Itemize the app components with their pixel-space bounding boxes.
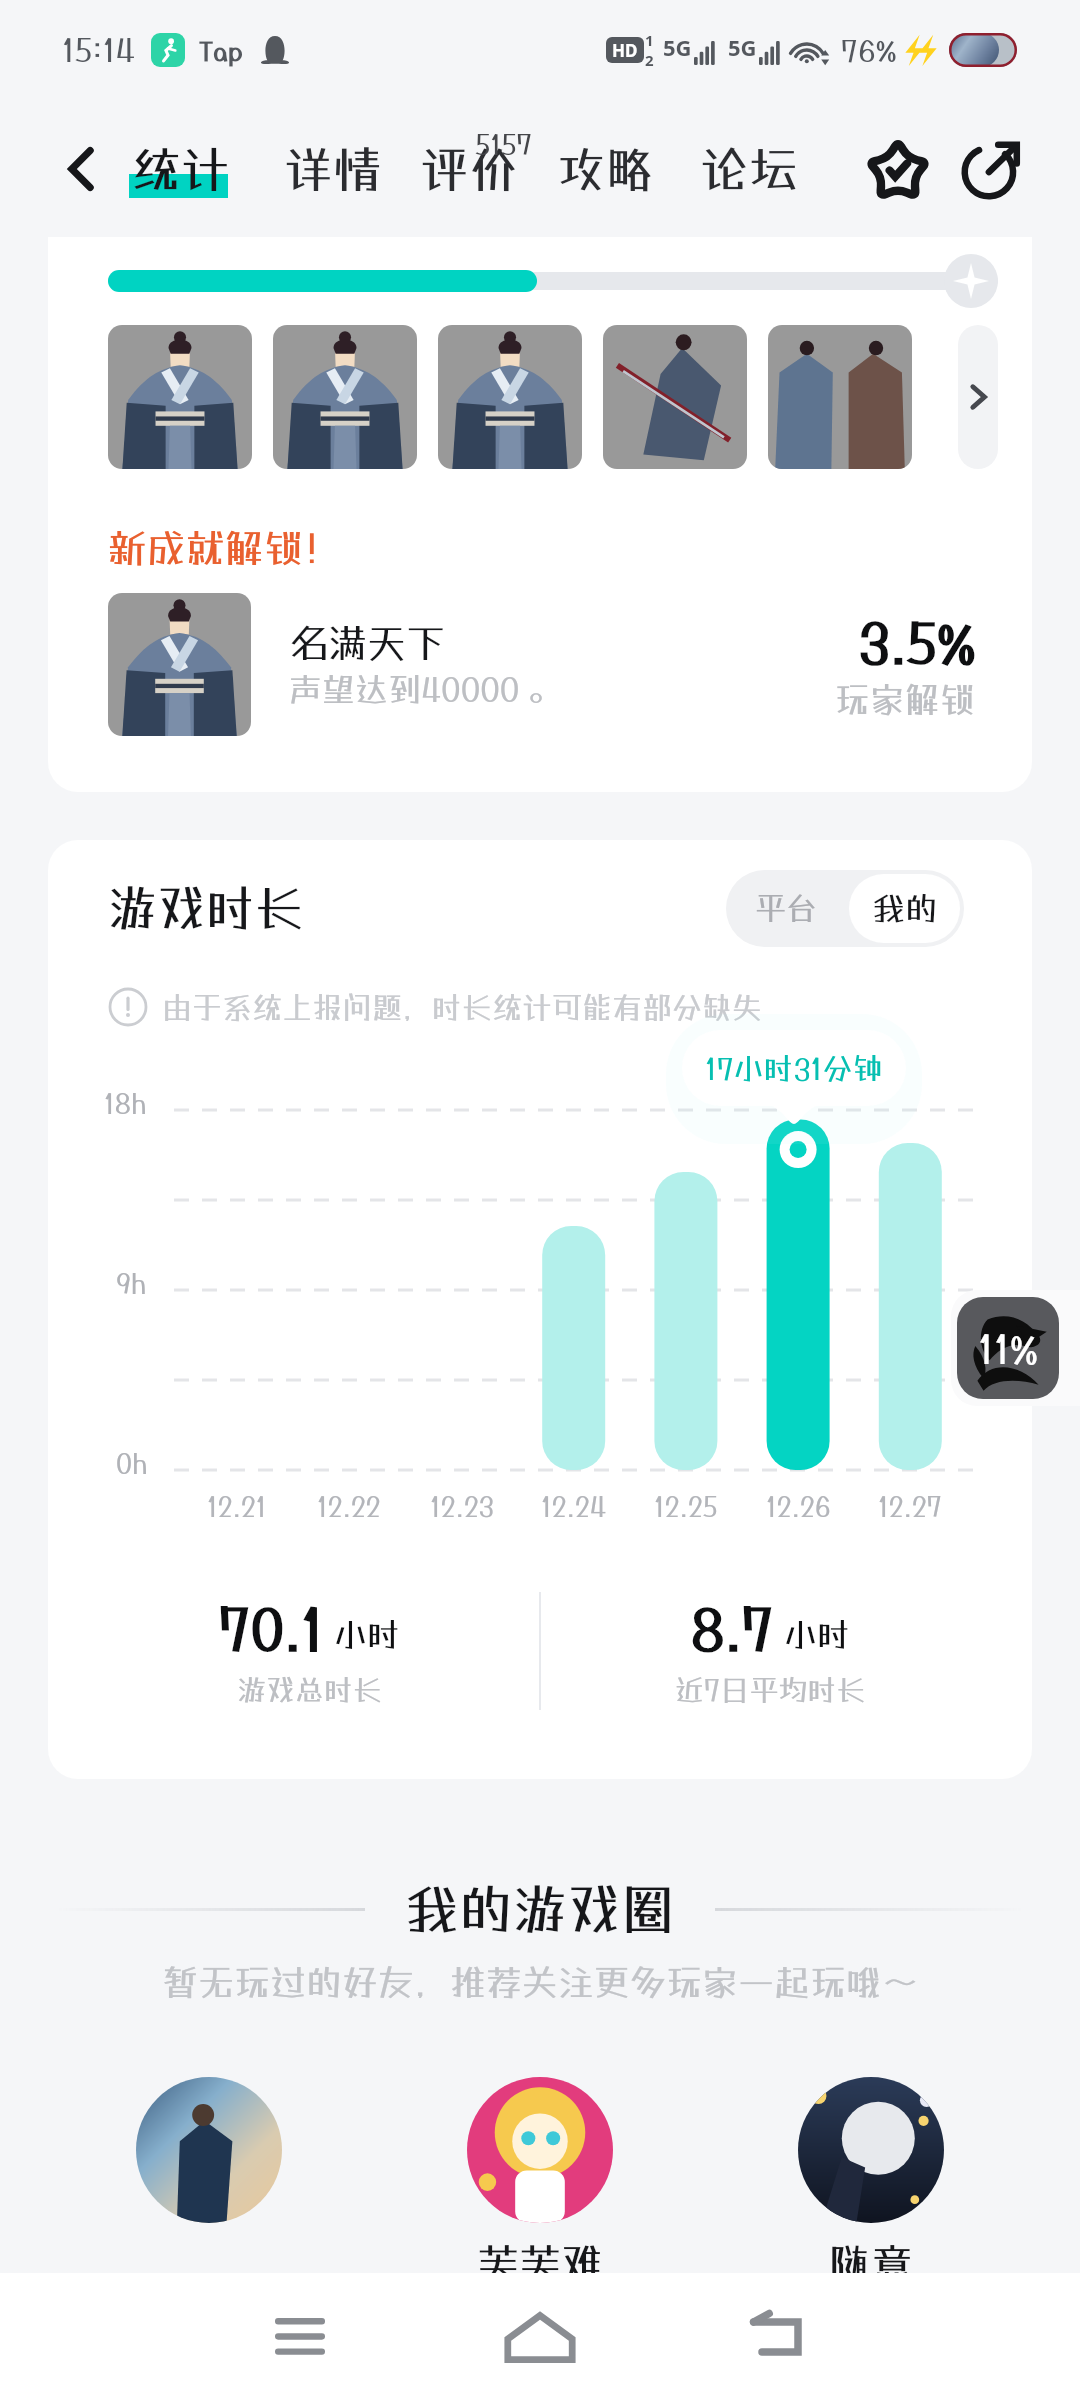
button[interactable]: [768, 325, 912, 469]
button[interactable]: [108, 325, 252, 469]
staticText: 76%: [841, 33, 897, 68]
button[interactable]: 我的: [849, 874, 960, 943]
staticText: 我的游戏圈: [405, 1877, 675, 1941]
staticText: 70.1: [219, 1596, 324, 1662]
button[interactable]: 统计: [132, 140, 231, 198]
staticText: 12.23: [430, 1490, 494, 1522]
staticText: 12.26: [766, 1490, 831, 1522]
staticText: 2: [645, 50, 654, 70]
button[interactable]: Recent apps: [240, 2277, 360, 2397]
staticText: 新成就解锁！: [108, 525, 343, 571]
button[interactable]: 论坛: [700, 140, 799, 198]
staticText: 12.22: [317, 1490, 381, 1522]
staticText: 我的: [872, 889, 938, 928]
staticText: 12.24: [541, 1490, 607, 1522]
button[interactable]: 平台: [726, 870, 845, 947]
staticText: 详情: [284, 140, 383, 198]
staticText: 8.7: [691, 1596, 774, 1662]
staticText: 17小时31分钟: [705, 1051, 883, 1086]
button[interactable]: [136, 2077, 282, 2273]
staticText: 1: [645, 30, 654, 50]
staticText: 5G: [728, 32, 757, 62]
staticText: 11%: [978, 1325, 1039, 1372]
staticText: 3.5%: [859, 610, 976, 675]
button[interactable]: [438, 325, 582, 469]
staticText: 平台: [755, 890, 817, 927]
staticText: 攻略: [557, 140, 656, 198]
button[interactable]: Favorite: [858, 129, 938, 209]
button[interactable]: 芙芙难: [467, 2077, 613, 2273]
staticText: 近7日平均时长: [675, 1673, 866, 1707]
staticText: 12.25: [654, 1490, 718, 1522]
staticText: 15:14: [62, 31, 135, 69]
staticText: 12.21: [207, 1490, 267, 1522]
staticText: Tap: [199, 35, 243, 66]
button[interactable]: 评价: [420, 140, 519, 198]
staticText: HD: [612, 39, 638, 62]
staticText: 5G: [663, 32, 692, 62]
button[interactable]: Download progress: [951, 1290, 1080, 1406]
button[interactable]: 攻略: [557, 140, 656, 198]
staticText: 玩家解锁: [835, 679, 976, 720]
staticText: 评价: [420, 140, 519, 198]
staticText: 18h: [104, 1087, 148, 1119]
staticText: 小时: [784, 1615, 850, 1654]
staticText: 暂无玩过的好友，推荐关注更多玩家一起玩哦～: [0, 1961, 1080, 2003]
button[interactable]: Home: [480, 2277, 600, 2397]
staticText: 名满天下: [289, 620, 446, 666]
staticText: 声望达到40000 。: [289, 670, 561, 709]
button[interactable]: 随意: [798, 2077, 944, 2273]
staticText: 芙芙难: [477, 2239, 604, 2273]
staticText: 12.27: [878, 1490, 942, 1522]
button[interactable]: Back: [44, 132, 118, 206]
staticText: 9h: [116, 1267, 147, 1299]
staticText: 游戏时长: [108, 879, 305, 937]
button[interactable]: More achievements: [958, 325, 998, 469]
staticText: 统计: [132, 140, 231, 198]
button[interactable]: [603, 325, 747, 469]
staticText: 5157: [475, 128, 533, 161]
button[interactable]: [108, 593, 251, 736]
staticText: 0h: [116, 1447, 149, 1479]
staticText: 随意: [829, 2239, 914, 2273]
button[interactable]: Back: [720, 2277, 840, 2397]
staticText: 游戏总时长: [237, 1673, 383, 1707]
staticText: 由于系统上报问题，时长统计可能有部分缺失: [162, 990, 762, 1025]
button[interactable]: 详情: [284, 140, 383, 198]
button[interactable]: Share: [952, 129, 1032, 209]
button[interactable]: [273, 325, 417, 469]
staticText: 论坛: [700, 140, 799, 198]
staticText: 小时: [334, 1615, 400, 1654]
